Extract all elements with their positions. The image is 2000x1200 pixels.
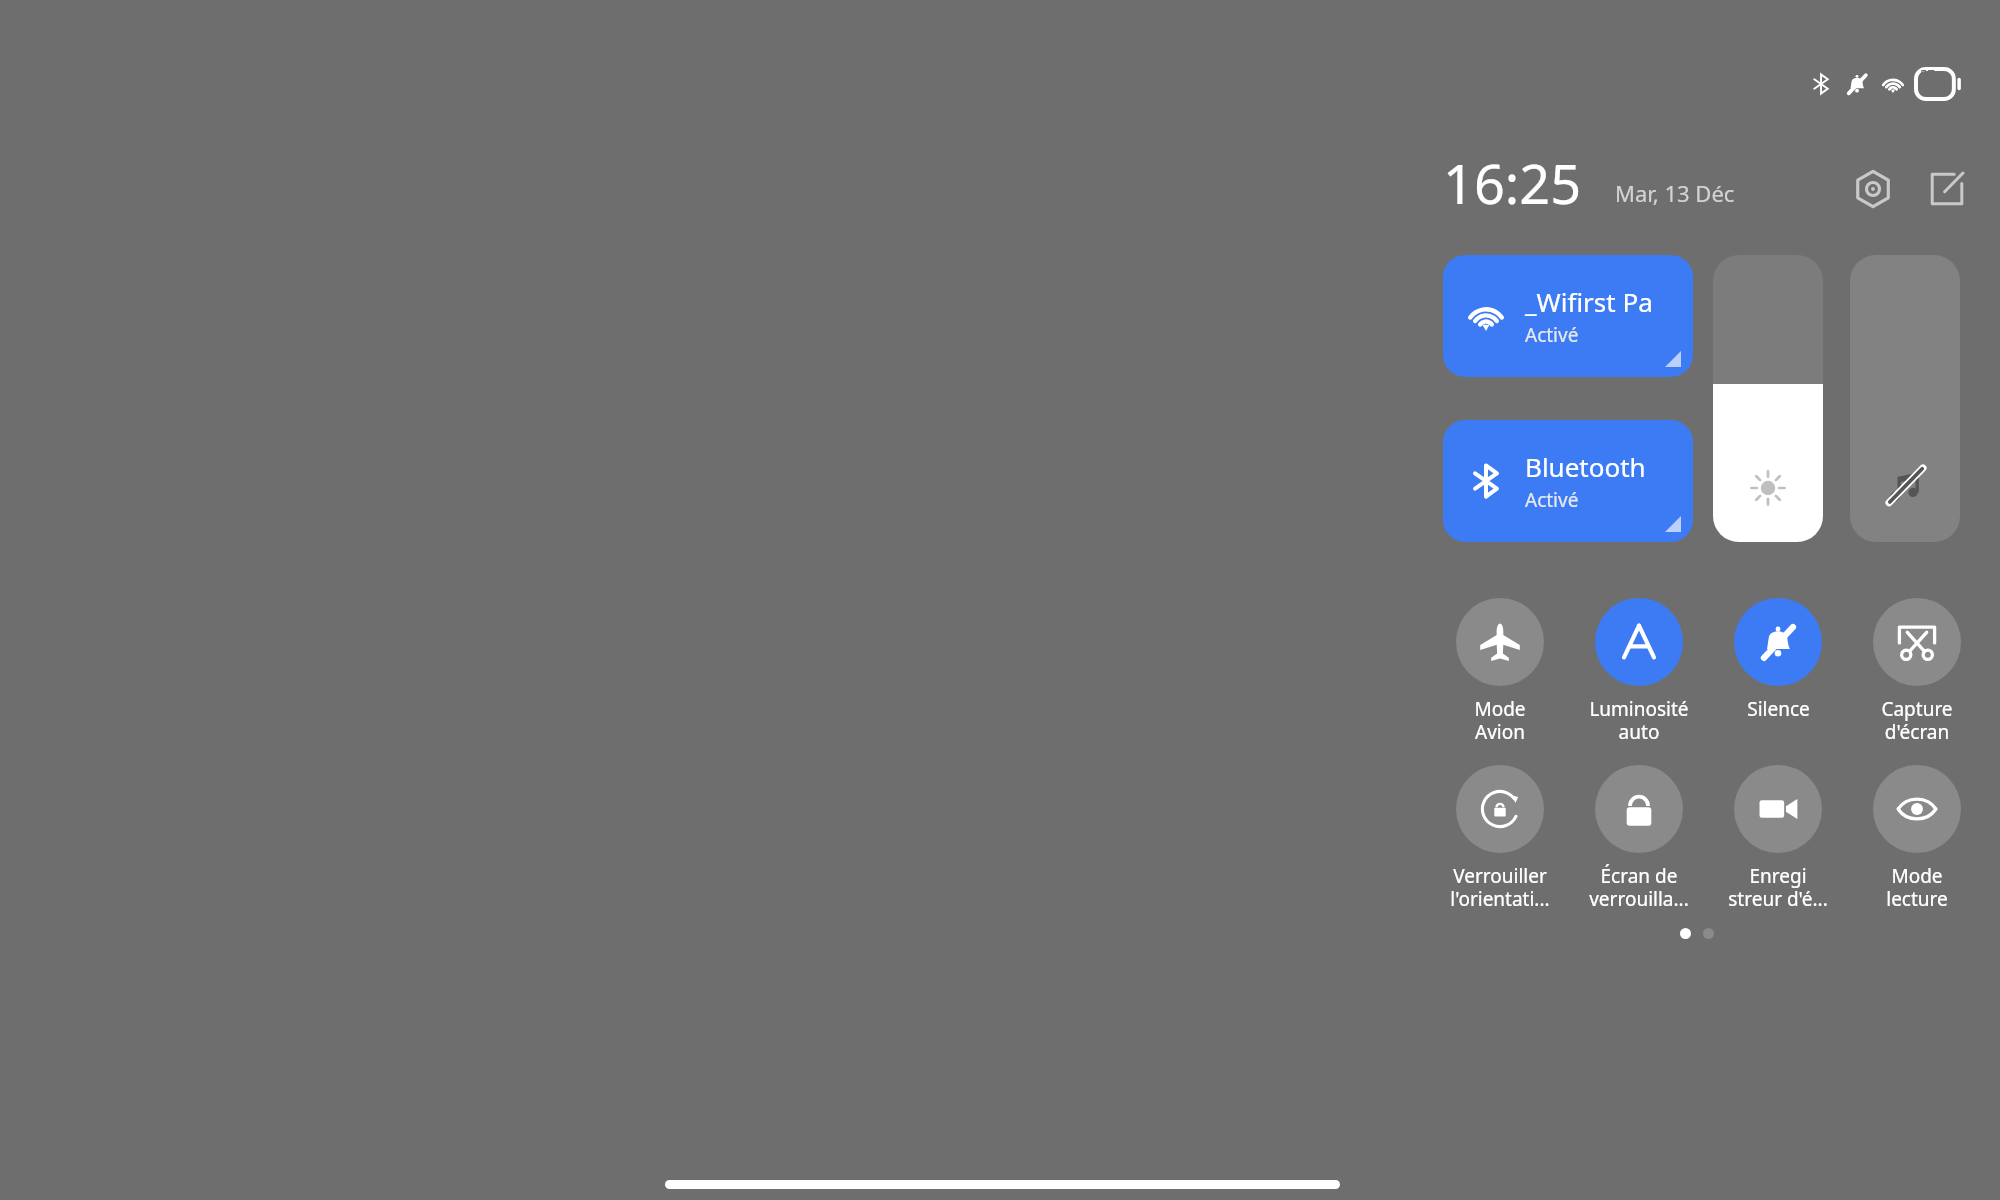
staticText: Capture d'écran xyxy=(1881,696,1953,745)
button[interactable]: Écran de verrouilla... xyxy=(1580,765,1698,912)
button[interactable]: Modifier xyxy=(1916,158,1978,220)
button[interactable]: Capture d'écran xyxy=(1858,598,1976,745)
staticText: Silence xyxy=(1747,696,1810,722)
button[interactable]: Média xyxy=(1850,255,1960,542)
staticText: 57 xyxy=(1920,65,1935,83)
staticText: Verrouiller l'orientati... xyxy=(1450,863,1550,912)
button[interactable]: Bluetooth xyxy=(1443,420,1693,542)
button[interactable]: _Wifirst Pa xyxy=(1443,255,1693,377)
staticText: Activé xyxy=(1525,322,1579,348)
staticText: Mode lecture xyxy=(1886,863,1948,912)
staticText: Activé xyxy=(1525,487,1579,513)
staticText: Luminosité auto xyxy=(1589,696,1689,745)
staticText: Écran de verrouilla... xyxy=(1589,863,1689,912)
staticText: Enregi streur d'é... xyxy=(1728,863,1828,912)
staticText: Bluetooth xyxy=(1525,449,1646,484)
button[interactable]: Paramètres xyxy=(1842,158,1904,220)
button[interactable]: Enregi streur d'é... xyxy=(1719,765,1837,912)
button[interactable]: Mode Avion xyxy=(1441,598,1559,745)
staticText: _Wifirst Pa xyxy=(1525,284,1653,319)
staticText: 16:25 xyxy=(1443,146,1582,220)
button[interactable]: Luminosité xyxy=(1713,255,1823,542)
button[interactable]: Luminosité auto xyxy=(1580,598,1698,745)
button[interactable]: Mode lecture xyxy=(1858,765,1976,912)
staticText: Mode Avion xyxy=(1474,696,1526,745)
staticText: Mar, 13 Déc xyxy=(1615,178,1735,208)
button[interactable]: Verrouiller l'orientati... xyxy=(1441,765,1559,912)
button[interactable]: Silence xyxy=(1719,598,1837,722)
